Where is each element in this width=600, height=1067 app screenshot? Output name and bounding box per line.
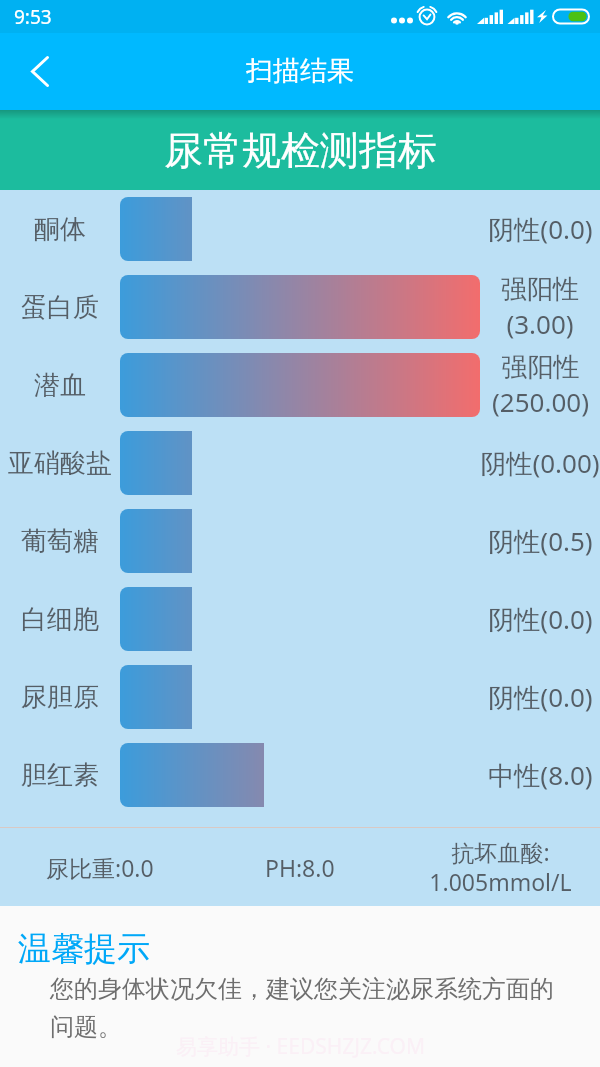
button[interactable]: Back xyxy=(0,33,80,110)
staticText: 阴性(0.0) xyxy=(488,679,593,715)
staticText: 蛋白质 xyxy=(21,291,99,324)
staticText: 您的身体状况欠佳，建议您关注泌尿系统方面的问题。 xyxy=(50,974,562,1043)
staticText: 葡萄糖 xyxy=(21,525,99,558)
staticText: 白细胞 xyxy=(21,603,99,636)
staticText: 抗坏血酸: 1.005mmol/L xyxy=(429,836,572,898)
button[interactable]: 亚硝酸盐 xyxy=(0,424,600,502)
staticText: 尿常规检测指标 xyxy=(164,126,437,175)
staticText: 潜血 xyxy=(34,369,86,402)
staticText: 强阳性 (250.00) xyxy=(492,351,589,419)
button[interactable]: 葡萄糖 xyxy=(0,502,600,580)
staticText: 强阳性 (3.00) xyxy=(501,273,579,341)
staticText: 酮体 xyxy=(34,213,86,246)
button[interactable]: 蛋白质 xyxy=(0,268,600,346)
staticText: 胆红素 xyxy=(21,759,99,792)
staticText: 中性(8.0) xyxy=(488,757,593,793)
staticText: PH:8.0 xyxy=(265,852,335,883)
staticText: 阴性(0.5) xyxy=(488,523,593,559)
staticText: 尿比重:0.0 xyxy=(46,852,154,883)
button[interactable]: 尿胆原 xyxy=(0,658,600,736)
staticText: 阴性(0.0) xyxy=(488,601,593,637)
button[interactable]: 白细胞 xyxy=(0,580,600,658)
staticText: 尿胆原 xyxy=(21,681,99,714)
button[interactable]: 潜血 xyxy=(0,346,600,424)
staticText: 温馨提示 xyxy=(18,928,150,970)
staticText: 易享助手 · EEDSHZJZ.COM xyxy=(176,1032,425,1061)
button[interactable]: 酮体 xyxy=(0,190,600,268)
staticText: 扫描结果 xyxy=(246,54,354,88)
button[interactable]: 胆红素 xyxy=(0,736,600,814)
staticText: 阴性(0.0) xyxy=(488,211,593,247)
staticText: 亚硝酸盐 xyxy=(8,447,112,480)
staticText: 阴性(0.00) xyxy=(480,445,600,481)
staticText: 9:53 xyxy=(14,4,52,30)
